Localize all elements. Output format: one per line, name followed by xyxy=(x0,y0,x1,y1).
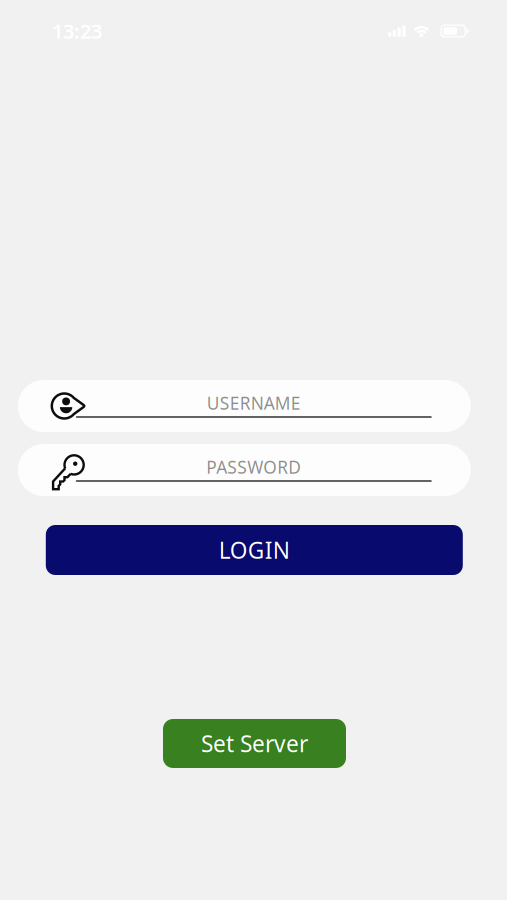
button[interactable]: PASSWORD xyxy=(18,444,471,496)
button[interactable]: LOGIN xyxy=(46,525,463,575)
staticText: USERNAME xyxy=(207,391,301,414)
staticText: LOGIN xyxy=(219,535,290,565)
staticText: 13:23 xyxy=(52,18,102,44)
button[interactable]: Set Server xyxy=(163,719,346,768)
staticText: PASSWORD xyxy=(206,455,301,478)
button[interactable]: USERNAME xyxy=(18,380,471,432)
staticText: Set Server xyxy=(201,728,308,758)
